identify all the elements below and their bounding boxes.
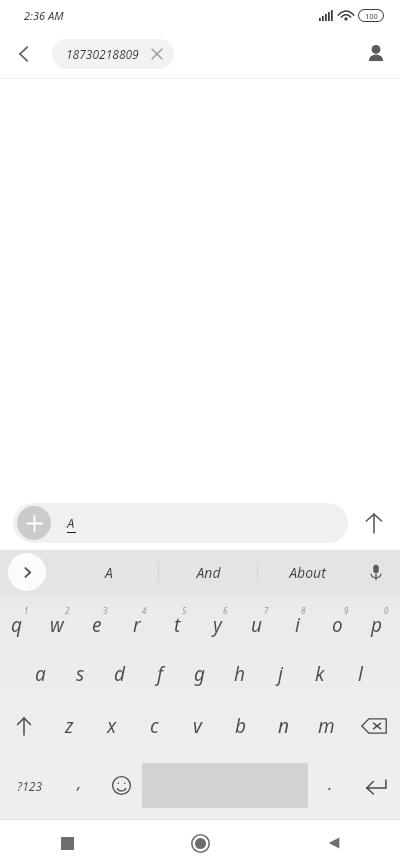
button[interactable]: Back (0, 30, 48, 78)
button[interactable]: A (60, 550, 158, 594)
staticText: 8 (301, 605, 306, 616)
button[interactable]: Send (348, 497, 400, 549)
staticText: t (174, 612, 181, 638)
staticText: 2:36 AM (24, 8, 64, 23)
button[interactable]: d (100, 648, 140, 700)
staticText: 0 (384, 605, 389, 616)
staticText: w (50, 612, 64, 638)
staticText: p (371, 612, 383, 638)
staticText: m (318, 713, 335, 739)
staticText: u (251, 612, 263, 638)
button[interactable]: p (360, 594, 400, 648)
button[interactable]: Shift (0, 700, 48, 752)
button[interactable]: , (58, 752, 100, 819)
staticText: g (194, 661, 206, 687)
button[interactable]: o (320, 594, 360, 648)
staticText: j (278, 661, 283, 687)
button[interactable]: z (48, 700, 90, 752)
button[interactable]: More suggestions (8, 553, 46, 591)
staticText: . (328, 772, 333, 795)
button[interactable]: And (159, 550, 257, 594)
button[interactable]: t (160, 594, 200, 648)
button[interactable]: e (80, 594, 120, 648)
button[interactable]: Emoji (100, 752, 142, 819)
staticText: 7 (264, 605, 269, 616)
staticText: y (213, 612, 222, 638)
button[interactable]: j (260, 648, 300, 700)
staticText: n (278, 713, 290, 739)
staticText: r (133, 612, 141, 638)
button[interactable]: c (133, 700, 176, 752)
staticText: 1 (24, 605, 29, 616)
staticText: A (105, 563, 113, 582)
staticText: s (76, 661, 85, 687)
button[interactable]: q (0, 594, 40, 648)
staticText: i (295, 612, 300, 638)
button[interactable]: i (280, 594, 320, 648)
staticText: h (234, 661, 246, 687)
button[interactable]: u (240, 594, 280, 648)
staticText: q (11, 612, 23, 638)
staticText: d (114, 661, 126, 687)
staticText: ?123 (17, 778, 42, 794)
button[interactable]: l (340, 648, 380, 700)
staticText: 18730218809 (66, 46, 139, 62)
button[interactable]: Recent apps (0, 820, 134, 866)
button[interactable]: r (120, 594, 160, 648)
button[interactable]: Voice input (356, 550, 396, 594)
button[interactable]: Backspace (348, 700, 400, 752)
button[interactable]: m (305, 700, 348, 752)
button[interactable]: Add attachment (13, 503, 348, 543)
staticText: l (358, 661, 363, 687)
staticText: 6 (223, 605, 228, 616)
staticText: And (196, 563, 221, 582)
staticText: , (77, 771, 82, 794)
button[interactable]: About (258, 550, 356, 594)
staticText: About (289, 563, 326, 582)
staticText: 5 (182, 605, 187, 616)
staticText: x (107, 713, 117, 739)
button[interactable]: f (140, 648, 180, 700)
staticText: b (235, 713, 247, 739)
button[interactable]: Add attachment (17, 506, 51, 540)
button[interactable]: k (300, 648, 340, 700)
button[interactable]: Remove recipient (148, 45, 166, 63)
staticText: 2 (65, 605, 70, 616)
staticText: 4 (142, 605, 147, 616)
button[interactable]: Enter (352, 752, 400, 819)
button[interactable]: y (200, 594, 240, 648)
button[interactable]: Contacts (352, 30, 400, 78)
button[interactable]: ?123 (0, 752, 58, 819)
button[interactable]: s (60, 648, 100, 700)
staticText: a (35, 661, 46, 687)
staticText: e (92, 612, 102, 638)
staticText: z (65, 713, 74, 739)
button[interactable]: Home (134, 820, 267, 866)
button[interactable]: Back (267, 820, 400, 866)
staticText: 100 (365, 11, 378, 21)
staticText: 3 (103, 605, 108, 616)
button[interactable]: b (219, 700, 262, 752)
staticText: 9 (344, 605, 349, 616)
staticText: c (150, 713, 159, 739)
button[interactable]: 18730218809 (52, 39, 174, 69)
button[interactable]: g (180, 648, 220, 700)
staticText: o (332, 612, 343, 638)
staticText: f (157, 661, 164, 687)
staticText: k (315, 661, 325, 687)
staticText: v (193, 713, 202, 739)
button[interactable]: . (308, 752, 352, 819)
button[interactable]: x (90, 700, 133, 752)
button[interactable]: w (40, 594, 80, 648)
button[interactable]: a (20, 648, 60, 700)
button[interactable]: h (220, 648, 260, 700)
staticText: A (67, 514, 75, 532)
button[interactable]: n (262, 700, 305, 752)
button[interactable]: v (176, 700, 219, 752)
